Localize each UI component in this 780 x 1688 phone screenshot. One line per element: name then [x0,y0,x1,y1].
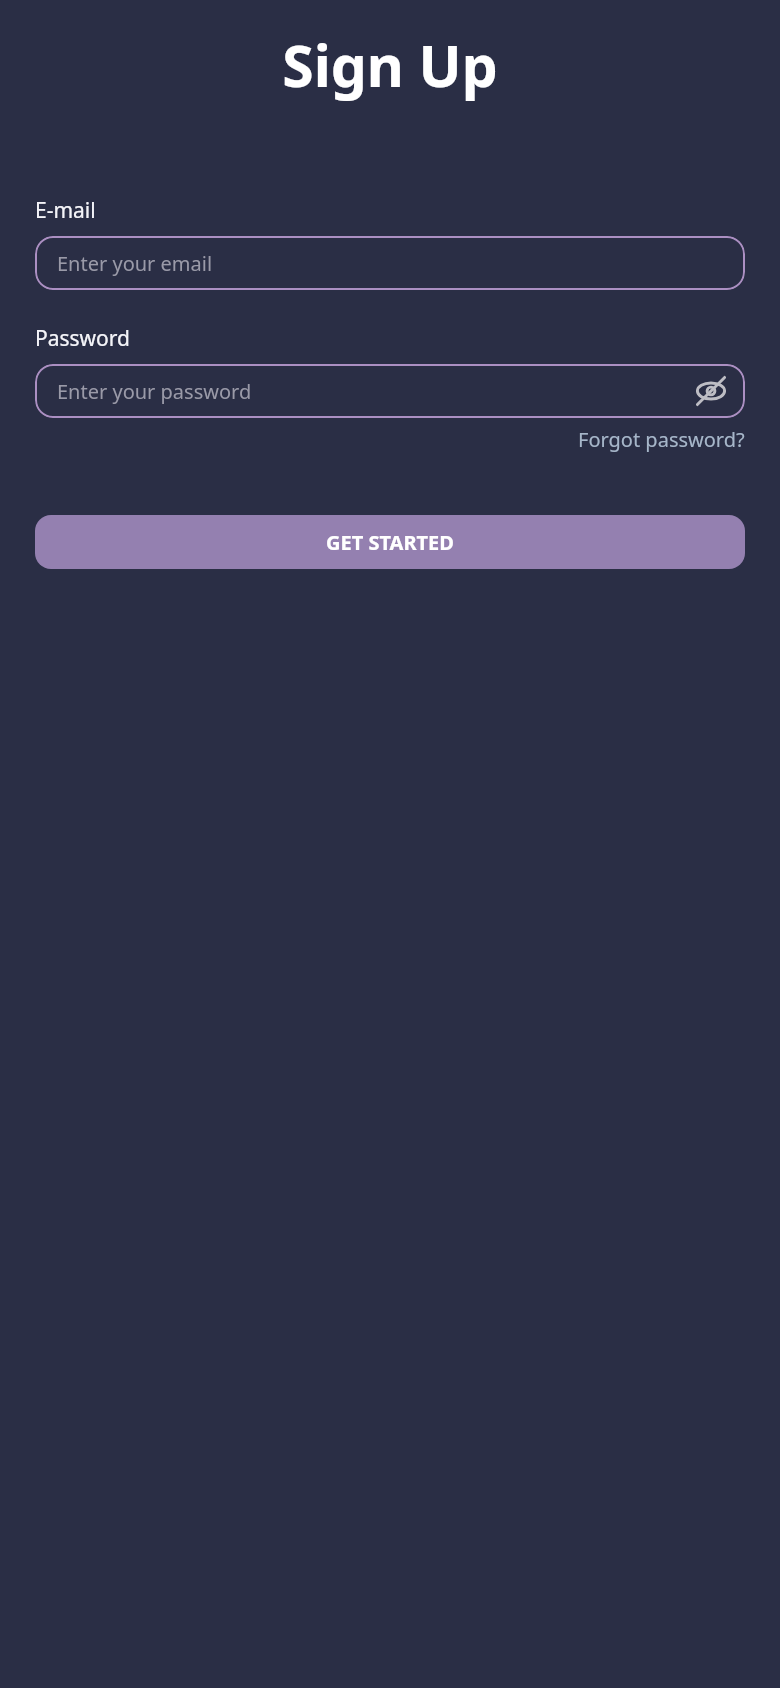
staticText: GET STARTED [326,529,454,556]
button[interactable]: Enter your email [35,236,745,290]
button[interactable]: Forgot password? [578,426,745,453]
button[interactable]: Enter your password [35,364,745,418]
staticText: Enter your password [57,378,252,405]
button[interactable]: GET STARTED [35,515,745,569]
staticText: Sign Up [0,26,780,104]
staticText: Enter your email [57,250,213,277]
staticText: Password [35,324,130,353]
staticText: E-mail [35,196,96,225]
button[interactable]: Show password [689,369,733,413]
